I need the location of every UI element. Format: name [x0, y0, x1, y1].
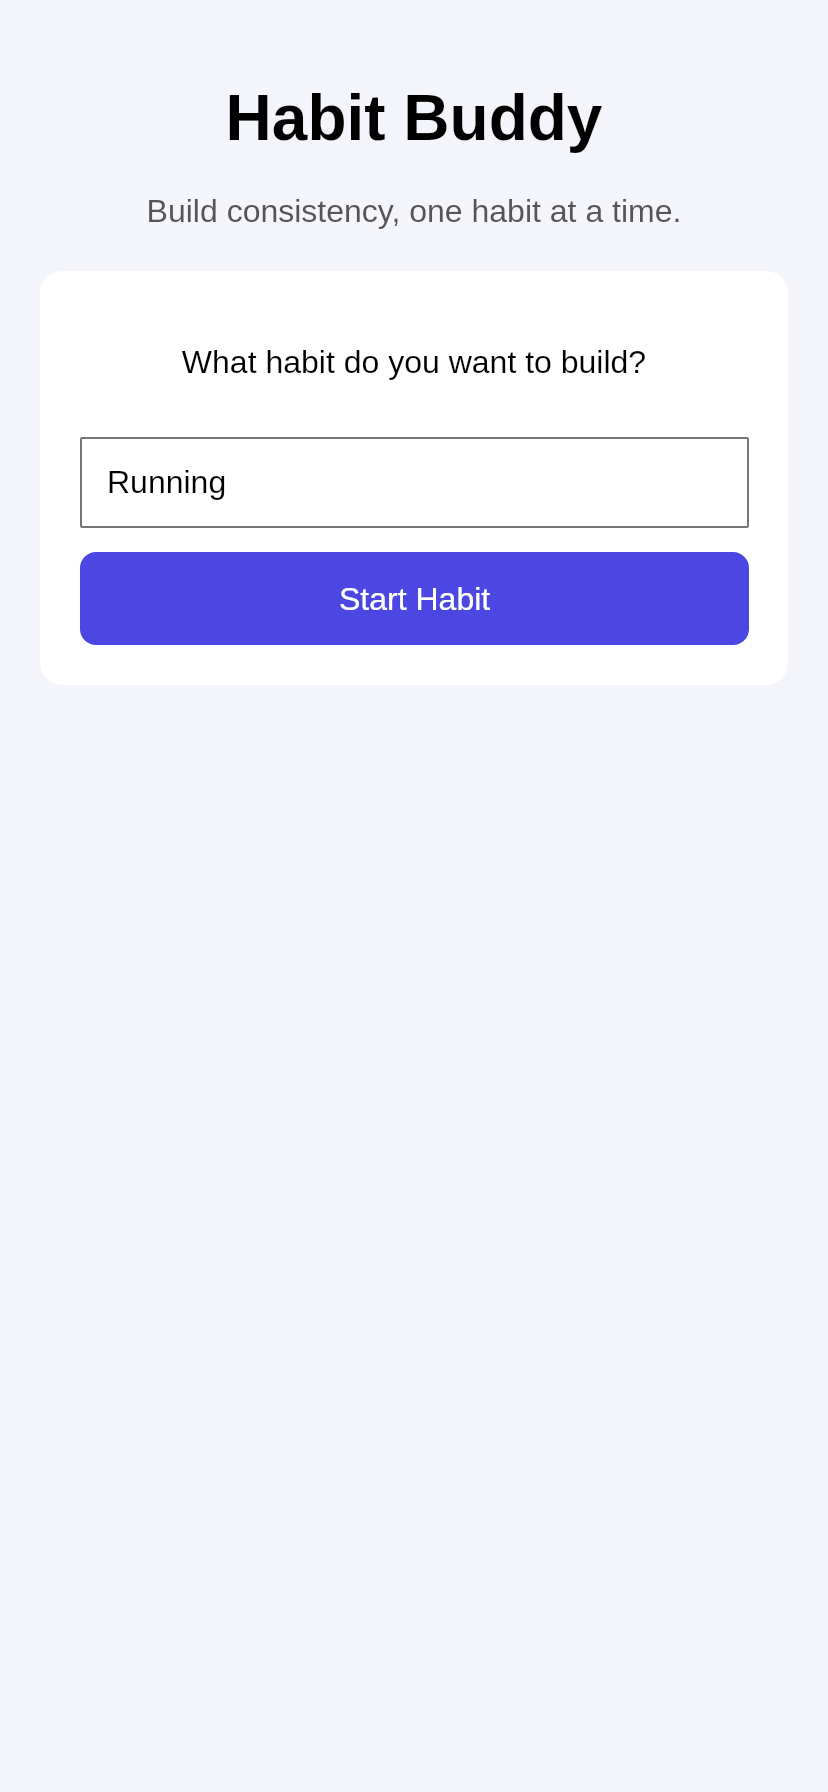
staticText: Running	[107, 464, 227, 500]
staticText: Habit Buddy	[0, 82, 828, 154]
button[interactable]: Start Habit	[80, 552, 749, 645]
button[interactable]: Habit name text field	[80, 437, 749, 528]
staticText: Start Habit	[339, 581, 491, 617]
staticText: Build consistency, one habit at a time.	[0, 193, 828, 229]
staticText: What habit do you want to build?	[40, 344, 788, 380]
